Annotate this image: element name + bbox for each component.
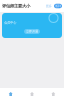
button[interactable]: Discover: [21, 88, 43, 100]
button[interactable]: 会员中心: [0, 12, 64, 38]
staticText: 更多: [45, 4, 51, 8]
staticText: 立即开通: [26, 29, 38, 33]
button[interactable]: Home: [0, 88, 21, 100]
button[interactable]: Profile: [43, 88, 64, 100]
staticText: 会员中心: [4, 20, 16, 25]
staticText: 评估师主要大小: [2, 3, 30, 9]
button[interactable]: 更多: [44, 4, 52, 8]
staticText: 签到: [55, 4, 61, 8]
button[interactable]: 签到: [54, 4, 62, 8]
